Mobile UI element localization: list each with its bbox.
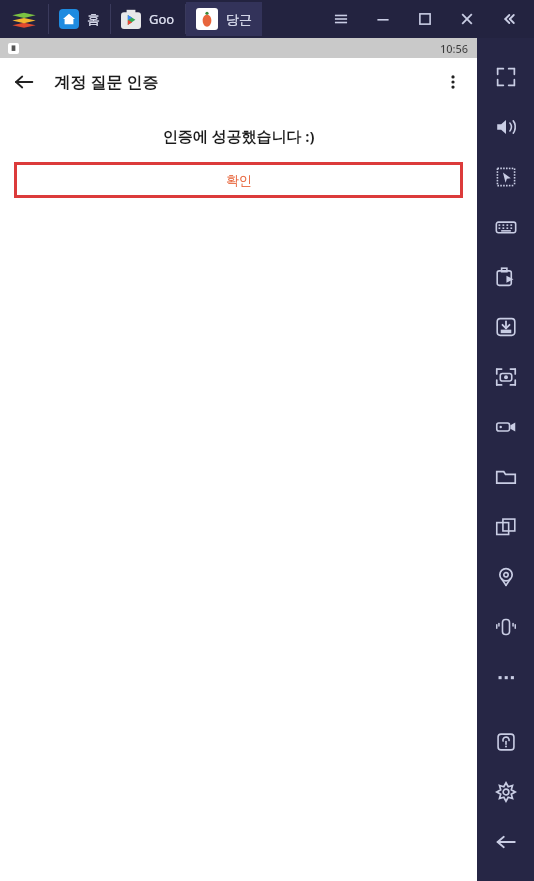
button[interactable]: Macro [477,252,534,302]
button[interactable]: Settings [477,767,534,817]
staticText: 인증에 성공했습니다 :) [0,126,477,146]
staticText: 당근 [226,11,252,27]
button[interactable]: Location [477,552,534,602]
button[interactable]: Collapse sidebar [488,0,530,38]
button[interactable]: Menu [320,0,362,38]
button[interactable]: Maximize [404,0,446,38]
button[interactable]: Close [446,0,488,38]
staticText: Goo [149,10,175,28]
button[interactable]: 당근 [186,2,262,36]
button[interactable]: Back [477,817,534,867]
button[interactable]: Screenshot [477,352,534,402]
button[interactable]: Media manager [477,452,534,502]
button[interactable]: Back [0,58,48,106]
button[interactable]: 확인 [14,162,463,198]
button[interactable]: 홈 [49,2,110,36]
button[interactable]: More [477,652,534,702]
button[interactable]: Shake [477,602,534,652]
staticText: 확인 [226,172,252,188]
staticText: 홈 [87,11,100,27]
button[interactable]: Fullscreen [477,52,534,102]
button[interactable]: Help [477,717,534,767]
button[interactable]: Volume [477,102,534,152]
button[interactable]: Goo [111,2,185,36]
button[interactable]: Multi instance [477,502,534,552]
button[interactable]: More options [429,58,477,106]
button[interactable]: Keyboard [477,202,534,252]
button[interactable]: Click controls [477,152,534,202]
button[interactable]: Install APK [477,302,534,352]
button[interactable]: Record [477,402,534,452]
button[interactable]: BlueStacks [0,0,48,38]
staticText: 10:56 [440,41,469,56]
staticText: 계정 질문 인증 [54,71,159,93]
button[interactable]: Minimize [362,0,404,38]
